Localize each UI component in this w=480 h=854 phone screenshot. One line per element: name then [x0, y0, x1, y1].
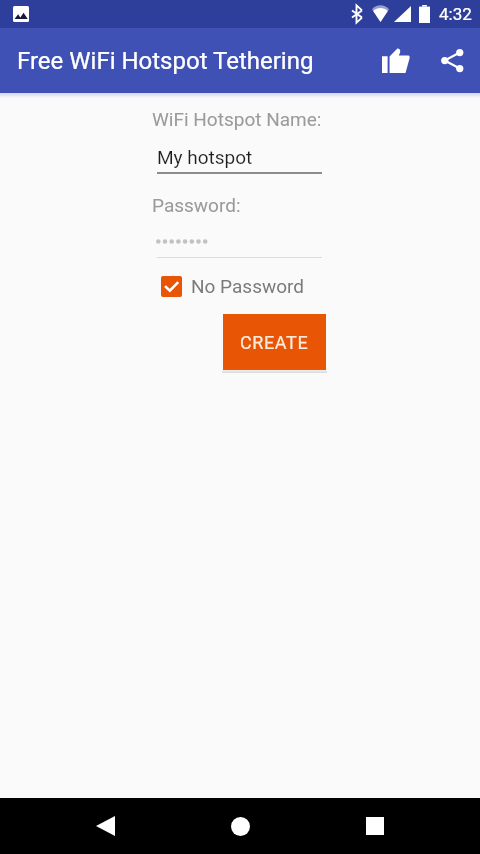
button[interactable]: CREATE: [223, 314, 326, 370]
staticText: My hotspot: [157, 146, 253, 168]
staticText: Free WiFi Hotspot Tethering: [17, 47, 314, 75]
staticText: 4:32: [439, 4, 472, 24]
button[interactable]: Home: [216, 802, 264, 850]
staticText: CREATE: [240, 332, 309, 353]
button[interactable]: Share: [424, 28, 480, 93]
button[interactable]: Back: [81, 802, 129, 850]
button[interactable]: Recent apps: [351, 802, 399, 850]
button[interactable]: No Password: [161, 275, 305, 297]
staticText: Password:: [152, 194, 241, 216]
staticText: WiFi Hotspot Name:: [152, 108, 322, 130]
button[interactable]: Rate this app: [368, 28, 424, 93]
staticText: No Password: [191, 275, 305, 297]
